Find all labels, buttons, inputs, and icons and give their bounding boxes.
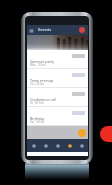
button[interactable]: Summer party: [27, 50, 88, 68]
button[interactable]: Tab 2: [40, 139, 52, 152]
staticText: Fri, 06 Feb: [30, 101, 44, 105]
staticText: Events: [38, 27, 52, 33]
button[interactable]: Tab 4: [64, 139, 76, 152]
button[interactable]: Menu: [29, 28, 34, 33]
staticText: Tue, 20 Jan: [30, 82, 45, 86]
staticText: Sat, 14 Feb: [30, 120, 45, 124]
staticText: Mon, 12 Jan: [30, 63, 46, 67]
button[interactable]: Birthday: [27, 107, 88, 125]
button[interactable]: Add event: [78, 129, 86, 137]
staticText: Team meetup: [30, 78, 54, 83]
button[interactable]: Team meetup: [27, 69, 88, 87]
button[interactable]: Tab 5: [76, 139, 88, 152]
button[interactable]: Tab 3: [52, 139, 64, 152]
staticText: Summer party: [30, 59, 55, 64]
button[interactable]: Notifications: [79, 27, 85, 33]
button[interactable]: Conference call: [27, 88, 88, 106]
staticText: Conference call: [30, 97, 56, 102]
staticText: Birthday: [30, 116, 45, 121]
button[interactable]: Tab 1: [27, 139, 40, 152]
